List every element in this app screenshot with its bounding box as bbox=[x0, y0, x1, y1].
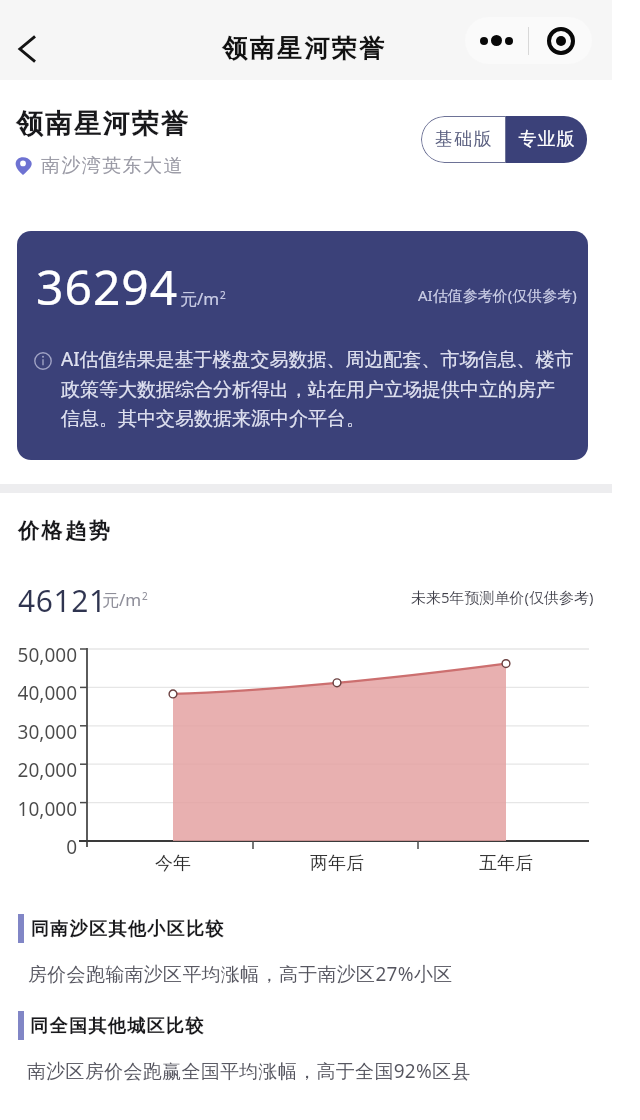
button[interactable]: More options bbox=[465, 17, 528, 64]
staticText: 五年后 bbox=[461, 852, 551, 875]
staticText: 领南星河荣誉 bbox=[16, 107, 190, 141]
staticText: AI估值参考价(仅供参考) bbox=[418, 285, 577, 305]
staticText: 10,000 bbox=[0, 796, 77, 822]
staticText: 2 bbox=[142, 589, 148, 603]
staticText: 同全国其他城区比较 bbox=[30, 1015, 205, 1038]
button[interactable]: 同南沙区其他小区比较 bbox=[0, 905, 612, 1003]
staticText: 0 bbox=[0, 834, 77, 860]
staticText: 南沙湾英东大道 bbox=[41, 154, 184, 178]
button[interactable]: 同全国其他城区比较 bbox=[0, 1003, 612, 1101]
button[interactable]: 专业版 bbox=[506, 116, 587, 163]
staticText: 未来5年预测单价(仅供参考) bbox=[411, 587, 594, 607]
staticText: 房价会跑输南沙区平均涨幅，高于南沙区27%小区 bbox=[28, 961, 453, 987]
staticText: 40,000 bbox=[0, 680, 77, 706]
staticText: 2 bbox=[220, 288, 226, 302]
staticText: 今年 bbox=[128, 852, 218, 875]
staticText: 46121 bbox=[18, 580, 107, 621]
staticText: 元/m bbox=[180, 287, 220, 310]
staticText: 基础版 bbox=[435, 128, 493, 151]
staticText: AI估值结果是基于楼盘交易数据、周边配套、市场信息、楼市 政策等大数据综合分析得… bbox=[61, 346, 574, 430]
staticText: 价格趋势 bbox=[18, 518, 113, 544]
staticText: 30,000 bbox=[0, 719, 77, 745]
staticText: 专业版 bbox=[518, 128, 575, 151]
staticText: 领南星河荣誉 bbox=[222, 33, 387, 64]
button[interactable]: Back bbox=[2, 21, 58, 77]
staticText: 20,000 bbox=[0, 757, 77, 783]
staticText: 50,000 bbox=[0, 642, 77, 668]
button[interactable]: 基础版 bbox=[421, 116, 506, 163]
staticText: 两年后 bbox=[292, 852, 382, 875]
staticText: 南沙区房价会跑赢全国平均涨幅，高于全国92%区县 bbox=[27, 1058, 471, 1084]
button[interactable]: Close bbox=[529, 17, 592, 64]
staticText: 同南沙区其他小区比较 bbox=[30, 918, 224, 941]
staticText: 元/m bbox=[102, 588, 142, 611]
staticText: 36294 bbox=[36, 254, 179, 319]
